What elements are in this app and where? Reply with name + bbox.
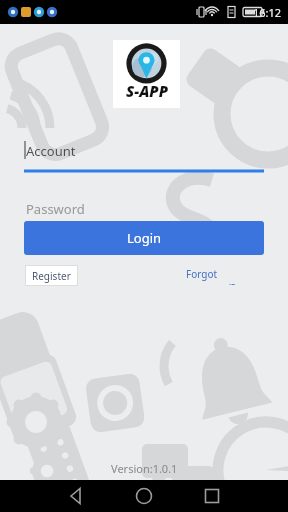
button[interactable]: Recent apps: [196, 480, 228, 512]
button[interactable]: Account: [24, 138, 264, 172]
staticText: S-APP: [126, 81, 168, 101]
staticText: Password: [26, 200, 85, 218]
staticText: Login: [127, 229, 162, 247]
staticText: Account: [26, 142, 76, 160]
button[interactable]: Home: [128, 480, 160, 512]
button[interactable]: Password: [24, 196, 264, 227]
button[interactable]: Login: [24, 221, 264, 255]
staticText: 16:12: [253, 5, 282, 20]
button[interactable]: Back: [60, 480, 92, 512]
staticText: Version:1.0.1: [111, 461, 178, 476]
staticText: Register: [32, 269, 71, 283]
button[interactable]: Register: [25, 265, 78, 286]
staticText: Forgot password?: [186, 267, 268, 285]
button[interactable]: Forgot password?: [186, 267, 268, 285]
